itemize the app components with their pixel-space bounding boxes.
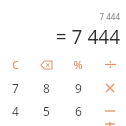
button[interactable]: Minus <box>94 99 126 122</box>
staticText: 5 <box>43 103 50 119</box>
button[interactable]: 7 <box>0 76 31 99</box>
button[interactable]: 9 <box>62 76 94 99</box>
staticText: 8 <box>43 80 50 96</box>
staticText: 7 <box>12 80 19 96</box>
staticText: % <box>73 57 83 72</box>
staticText: = 7 444 <box>55 24 120 48</box>
button[interactable]: 6 <box>62 99 94 122</box>
button[interactable]: 8 <box>31 76 62 99</box>
button[interactable]: 4 <box>0 99 31 122</box>
button[interactable]: % <box>62 53 94 76</box>
button[interactable]: C <box>0 53 31 76</box>
button[interactable]: Plus <box>94 122 126 126</box>
button[interactable]: Backspace <box>31 53 62 76</box>
button[interactable]: Divide <box>94 53 126 76</box>
staticText: 9 <box>75 80 82 96</box>
staticText: C <box>12 58 19 72</box>
staticText: 7 444 <box>99 11 120 22</box>
staticText: 4 <box>12 103 19 119</box>
button[interactable]: Multiply <box>94 76 126 99</box>
button[interactable]: 5 <box>31 99 62 122</box>
staticText: 6 <box>75 103 82 119</box>
